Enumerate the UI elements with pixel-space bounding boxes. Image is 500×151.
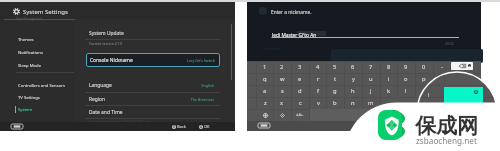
button[interactable]: x (273, 97, 291, 109)
button[interactable]: z (256, 97, 274, 109)
button[interactable]: Console Nickname (86, 53, 220, 67)
button[interactable]: f (309, 85, 327, 97)
staticText: Language (89, 82, 112, 89)
button[interactable]: 2 (273, 61, 291, 73)
staticText: 7 (369, 63, 373, 71)
button[interactable]: - (433, 61, 451, 73)
staticText: g (333, 87, 337, 95)
button[interactable]: 1 (256, 61, 274, 73)
button[interactable]: r (309, 73, 327, 85)
staticText: The Americas (169, 97, 214, 102)
button[interactable]: 6 (344, 61, 362, 73)
button[interactable]: y (344, 73, 362, 85)
staticText: x (280, 99, 284, 107)
button[interactable]: a (256, 85, 274, 97)
button[interactable]: TV Settings (0, 92, 75, 103)
button[interactable]: o (397, 73, 415, 85)
staticText: t (334, 75, 337, 83)
button[interactable]: w (273, 73, 291, 85)
button[interactable]: n (344, 97, 362, 109)
staticText: l (405, 87, 407, 95)
staticText: 2 (280, 63, 284, 71)
staticText: a (263, 87, 267, 95)
button[interactable]: b (326, 97, 344, 109)
button[interactable]: u (362, 73, 380, 85)
button[interactable]: Sleep Mode (0, 60, 75, 71)
staticText: 1 (263, 63, 267, 71)
button[interactable]: p (415, 73, 433, 85)
staticText: z (264, 99, 267, 107)
staticText: 4 (316, 63, 320, 71)
staticText: A (469, 65, 471, 67)
button[interactable]: System Update (85, 27, 220, 39)
button[interactable]: h (344, 85, 362, 97)
button[interactable]: v (309, 97, 327, 109)
button[interactable]: k (380, 85, 398, 97)
button[interactable]: Date and Time (85, 105, 220, 118)
button[interactable]: Language (256, 109, 274, 121)
button[interactable]: c (291, 97, 309, 109)
button[interactable]: s (273, 85, 291, 97)
button[interactable]: m (362, 97, 380, 109)
staticText: System Settings (23, 8, 68, 16)
button[interactable]: 0 (415, 61, 433, 73)
staticText: k (387, 87, 391, 95)
staticText: u (369, 75, 373, 83)
staticText: A (200, 125, 202, 129)
staticText: h (351, 87, 355, 95)
button[interactable]: System (0, 104, 75, 115)
staticText: l (428, 92, 430, 99)
button[interactable]: 9 (397, 61, 415, 73)
button[interactable]: Emoji (273, 109, 291, 121)
staticText: 5 (333, 63, 337, 71)
button[interactable]: Region (85, 92, 220, 105)
staticText: Lory Git's Switch (172, 58, 215, 63)
staticText: nickname (265, 47, 280, 51)
button[interactable]: 3 (291, 61, 309, 73)
staticText: v (317, 99, 320, 107)
button[interactable]: 7 (362, 61, 380, 73)
staticText: 6 (351, 63, 355, 71)
staticText: System (18, 107, 33, 113)
button[interactable]: A (199, 124, 210, 129)
staticText: Back (177, 124, 186, 129)
staticText: 8 (387, 63, 391, 71)
button[interactable]: B (172, 124, 186, 129)
staticText: n (351, 99, 355, 107)
staticText: System Update (89, 30, 124, 37)
staticText: - (441, 63, 443, 71)
button[interactable]: Input mode (291, 109, 309, 121)
button[interactable]: g (326, 85, 344, 97)
button[interactable]: Themes (0, 34, 75, 45)
staticText: Jedi Master Gi'to An (272, 32, 317, 39)
button[interactable]: t (326, 73, 344, 85)
button[interactable]: i (380, 73, 398, 85)
button[interactable]: 4 (309, 61, 327, 73)
staticText: f (317, 87, 319, 95)
staticText: b (333, 99, 337, 107)
button[interactable]: j (362, 85, 380, 97)
staticText: Region (89, 96, 106, 103)
staticText: m (368, 99, 374, 107)
button[interactable]: e (291, 73, 309, 85)
button[interactable]: q (256, 73, 274, 85)
button[interactable]: d (291, 85, 309, 97)
staticText: Current date and time 8/3/2023 9:54 a.m. (89, 120, 151, 124)
button[interactable]: Language (85, 78, 220, 91)
staticText: y (352, 75, 355, 83)
other: Console (258, 123, 270, 128)
button[interactable]: 5 (326, 61, 344, 73)
button[interactable]: l (397, 85, 415, 97)
button[interactable]: 8 (380, 61, 398, 73)
other: Console (11, 124, 23, 129)
button[interactable]: Space (309, 109, 481, 121)
button[interactable]: Backspace (451, 62, 473, 70)
staticText: Themes (18, 37, 34, 43)
staticText: c (299, 99, 302, 107)
staticText: 3 (298, 63, 302, 71)
button[interactable]: Controllers and Sensors (0, 80, 75, 91)
staticText: q (263, 75, 267, 83)
button[interactable]: Notifications (0, 47, 75, 58)
staticText: i (388, 75, 390, 83)
staticText: p (422, 75, 426, 83)
